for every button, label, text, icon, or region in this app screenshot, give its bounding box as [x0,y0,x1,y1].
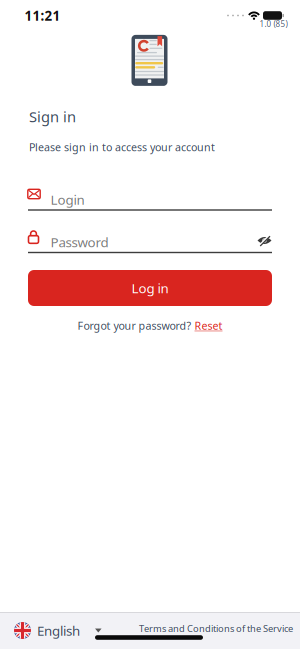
staticText: Password [50,233,108,251]
button[interactable]: Language: English [14,622,102,639]
staticText: 11:21 [24,7,60,24]
staticText: Sign in [29,107,76,126]
button[interactable]: Login [0,180,300,212]
button[interactable]: Reset [194,318,222,333]
staticText: Reset [194,318,222,333]
button[interactable]: Log in [28,270,272,306]
staticText: Please sign in to access your account [29,140,215,154]
staticText: Log in [131,279,168,297]
staticText: Login [50,191,84,208]
staticText: 1.0 (85) [259,19,287,29]
button[interactable]: Terms and Conditions of the Service [139,622,293,635]
button[interactable]: Password [0,222,300,254]
staticText: Terms and Conditions of the Service [139,622,293,635]
staticText: English [37,622,80,639]
staticText: Forgot your password? [77,318,191,333]
button[interactable]: Show password [253,231,276,250]
